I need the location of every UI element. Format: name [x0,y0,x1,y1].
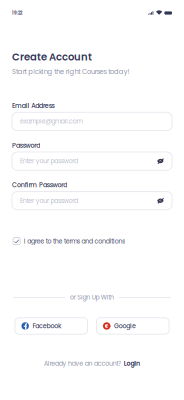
staticText: Facebook [32,322,61,330]
button[interactable]: I agree to the terms and conditions [0,237,184,246]
button[interactable]: example@gmail.com [12,112,172,130]
staticText: Google [114,322,136,330]
staticText: I agree to the terms and conditions [24,237,125,246]
button[interactable]: Already have an account? [0,359,184,368]
staticText: 19:22 [12,10,22,16]
button[interactable]: Enter your password [12,152,172,170]
staticText: Login [124,359,140,368]
button[interactable]: Facebook [15,318,87,334]
staticText: Enter your password [20,157,78,165]
staticText: Email Address [12,101,55,110]
staticText: Password [12,141,40,150]
staticText: example@gmail.com [20,117,82,126]
staticText: Confirm Password [12,181,67,190]
staticText: Already have an account? [44,359,121,368]
staticText: Enter your password [20,196,78,205]
button[interactable]: Enter your password [12,192,172,210]
staticText: Create Account [12,50,92,64]
staticText: or Sign Up With [70,293,114,302]
button[interactable]: Google [96,318,169,334]
staticText: Start picking the right Courses today! [12,67,130,76]
